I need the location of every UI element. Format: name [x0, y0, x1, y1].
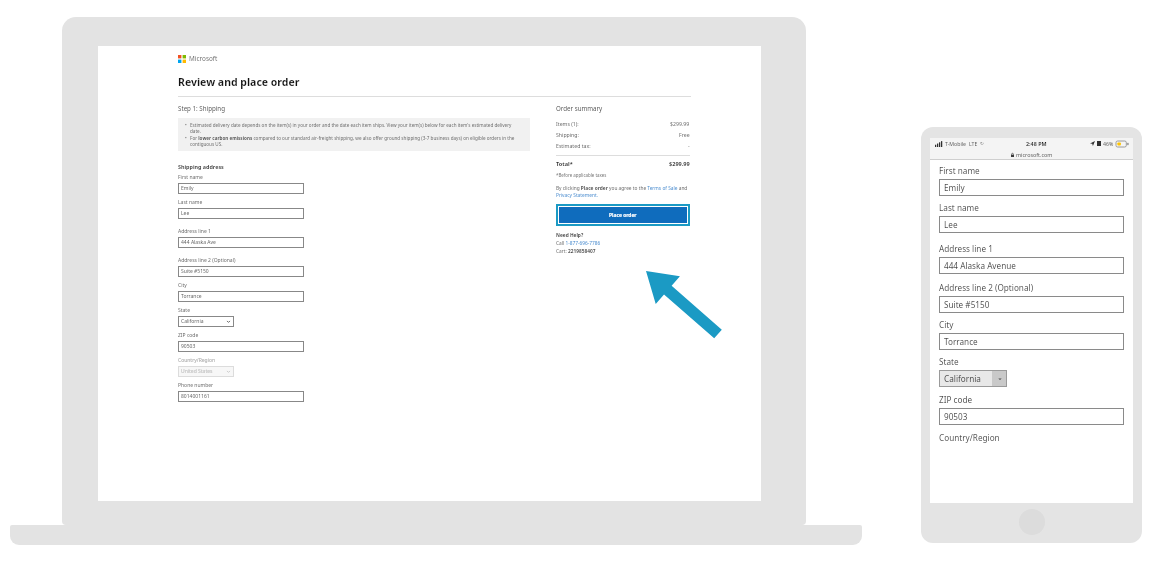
staticText: California: [181, 318, 204, 325]
staticText: First name: [178, 174, 203, 181]
staticText: $299.99: [669, 160, 690, 168]
staticText: microsoft.com: [1016, 151, 1053, 158]
staticText: State: [939, 356, 959, 367]
button[interactable]: Emily: [178, 183, 304, 194]
button[interactable]: 444 Alaska Ave: [178, 237, 304, 248]
button[interactable]: Place order: [559, 207, 687, 223]
button[interactable]: Lee: [939, 216, 1124, 233]
staticText: Torrance: [181, 293, 202, 300]
staticText: Suite #5150: [944, 299, 990, 310]
staticText: Suite #5150: [181, 268, 209, 275]
button[interactable]: Torrance: [178, 291, 304, 302]
other: Pointer arrow to Place order: [640, 264, 722, 338]
staticText: Order summary: [556, 104, 603, 112]
staticText: For lower carbon emissions compared to o…: [190, 135, 523, 147]
staticText: California: [944, 373, 981, 384]
button[interactable]: Suite #5150: [939, 296, 1124, 313]
button[interactable]: Lee: [178, 208, 304, 219]
staticText: 2:48 PM: [1026, 140, 1047, 147]
staticText: Free: [679, 131, 690, 138]
staticText: Estimated delivery date depends on the i…: [190, 122, 523, 134]
staticText: Country/Region: [939, 432, 1000, 443]
staticText: Place order: [609, 212, 637, 219]
staticText: Cart: 2219858407: [556, 248, 596, 255]
staticText: City: [178, 282, 187, 289]
staticText: City: [939, 319, 954, 330]
staticText: Shipping:: [556, 131, 579, 138]
button[interactable]: 444 Alaska Avenue: [939, 257, 1124, 274]
staticText: Emily: [944, 182, 965, 193]
staticText: Country/Region: [178, 357, 216, 364]
staticText: Shipping address: [178, 163, 224, 170]
staticText: ↻: [980, 141, 984, 146]
staticText: 46%: [1103, 140, 1114, 147]
staticText: Microsoft: [189, 54, 218, 63]
staticText: United States: [181, 368, 213, 375]
staticText: 444 Alaska Ave: [181, 239, 216, 246]
button[interactable]: Emily: [939, 179, 1124, 196]
staticText: Phone number: [178, 382, 214, 389]
staticText: Last name: [178, 199, 203, 206]
staticText: Total*: [556, 160, 573, 168]
button[interactable]: United States: [178, 366, 234, 377]
staticText: •: [185, 122, 187, 128]
staticText: Step 1: Shipping: [178, 104, 225, 112]
staticText: By clicking Place order you agree to the…: [556, 185, 690, 198]
staticText: First name: [939, 165, 980, 176]
staticText: Address line 1: [178, 228, 211, 235]
staticText: 444 Alaska Avenue: [944, 260, 1016, 271]
staticText: -: [688, 142, 690, 149]
staticText: Lee: [944, 219, 958, 230]
button[interactable]: 90503: [939, 408, 1124, 425]
staticText: Lee: [181, 210, 190, 217]
button[interactable]: 8014001161: [178, 391, 304, 402]
staticText: Items (1):: [556, 120, 579, 127]
staticText: Need Help?: [556, 232, 584, 239]
staticText: Review and place order: [178, 75, 300, 89]
staticText: Estimated tax:: [556, 142, 591, 149]
staticText: Address line 1: [939, 243, 993, 254]
staticText: Call 1-877-696-7786: [556, 240, 601, 247]
staticText: *Before applicable taxes: [556, 172, 607, 178]
staticText: T-Mobile: [945, 140, 966, 147]
staticText: •: [185, 135, 187, 141]
button[interactable]: Torrance: [939, 333, 1124, 350]
staticText: Address line 2 (Optional): [939, 282, 1034, 293]
staticText: State: [178, 307, 190, 314]
button[interactable]: 90503: [178, 341, 304, 352]
staticText: Last name: [939, 202, 979, 213]
staticText: 90503: [944, 411, 968, 422]
staticText: $299.99: [670, 120, 690, 127]
staticText: LTE: [969, 140, 978, 147]
button[interactable]: California: [939, 370, 1007, 387]
staticText: Address line 2 (Optional): [178, 257, 236, 264]
staticText: 8014001161: [181, 393, 210, 400]
staticText: 90503: [181, 343, 196, 350]
staticText: Torrance: [944, 336, 978, 347]
staticText: ZIP code: [939, 394, 973, 405]
staticText: Emily: [181, 185, 194, 192]
button[interactable]: Suite #5150: [178, 266, 304, 277]
button[interactable]: California: [178, 316, 234, 327]
staticText: ZIP code: [178, 332, 199, 339]
